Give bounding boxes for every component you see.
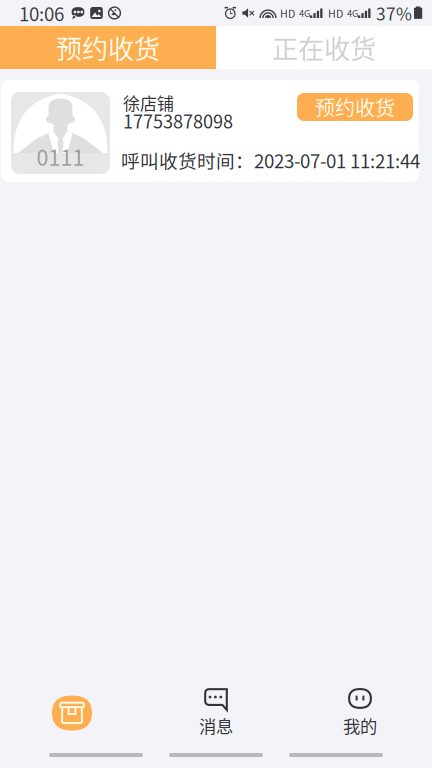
- button[interactable]: 我的: [288, 686, 432, 740]
- button[interactable]: 消息: [144, 686, 288, 740]
- staticText: 17753878098: [123, 107, 233, 134]
- staticText: 10:06: [19, 0, 64, 26]
- staticText: 预约收货: [315, 92, 395, 121]
- staticText: 预约收货: [56, 29, 160, 66]
- button[interactable]: 收货: [0, 686, 144, 740]
- staticText: 37%: [376, 0, 412, 26]
- button[interactable]: 正在收货: [216, 26, 432, 69]
- staticText: 呼叫收货时间：2023-07-01 11:21:44: [121, 146, 420, 173]
- staticText: HD: [328, 5, 343, 21]
- staticText: 4G: [299, 6, 310, 20]
- staticText: 4G: [347, 6, 358, 20]
- staticText: 正在收货: [272, 29, 376, 66]
- button[interactable]: 预约收货: [297, 93, 413, 121]
- staticText: 我的: [343, 713, 377, 738]
- staticText: 徐店铺: [123, 90, 174, 115]
- staticText: 0111: [36, 141, 84, 172]
- button[interactable]: 预约收货: [0, 26, 216, 69]
- staticText: HD: [280, 5, 295, 21]
- staticText: 消息: [199, 713, 233, 738]
